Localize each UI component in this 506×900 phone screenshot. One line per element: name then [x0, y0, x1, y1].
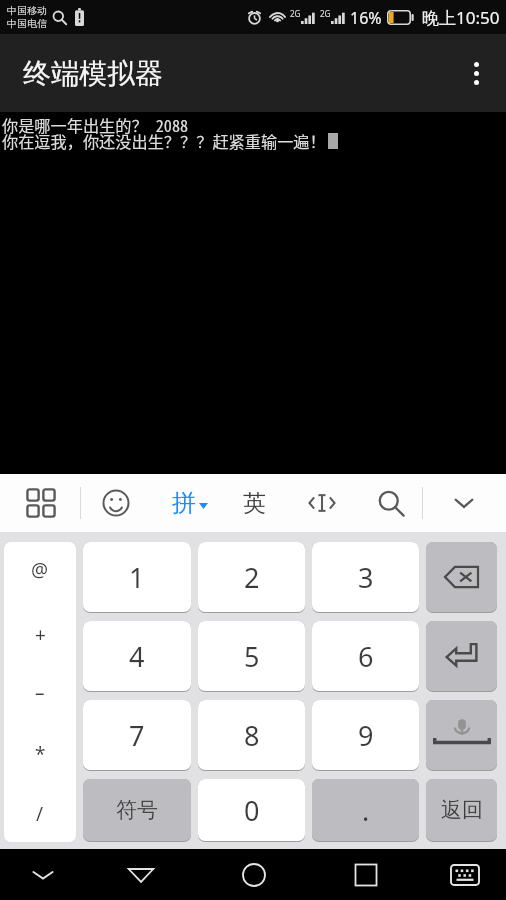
staticText: 你是哪一年出生的？ 2088 [2, 113, 189, 136]
button[interactable]: Switch keyboard [437, 849, 493, 900]
staticText: 4 [129, 638, 145, 675]
button[interactable] [426, 700, 497, 770]
staticText: 终端模拟器 [23, 56, 163, 91]
other: Voice input [426, 700, 497, 771]
button[interactable] [426, 542, 497, 612]
button[interactable]: 8 [198, 700, 305, 770]
button[interactable]: Emoji [88, 474, 144, 532]
staticText: + [35, 622, 46, 648]
button[interactable]: 5 [198, 621, 305, 691]
button[interactable]: Search [363, 474, 419, 532]
staticText: 中国电信 [7, 17, 47, 30]
other: Backspace [426, 542, 497, 613]
staticText: 7 [129, 717, 145, 754]
staticText: 9 [358, 717, 374, 754]
staticText: 5 [244, 638, 260, 675]
staticText: 2G [290, 8, 301, 19]
staticText: 英 [243, 489, 266, 518]
button[interactable]: 符号 [83, 779, 191, 841]
staticText: 你在逗我，你还没出生？？？赶紧重输一遍！ [2, 129, 326, 152]
button[interactable]: Recents [338, 849, 394, 900]
button[interactable]: More options [446, 34, 506, 112]
button[interactable]: Hide keyboard [436, 474, 492, 532]
button[interactable]: Back [113, 849, 169, 900]
button[interactable]: 3 [312, 542, 419, 612]
button[interactable]: 6 [312, 621, 419, 691]
button[interactable]: Home [226, 849, 282, 900]
staticText: * [35, 741, 46, 767]
staticText: @ [31, 557, 49, 583]
other: Return [426, 779, 497, 842]
button[interactable]: @ [4, 542, 76, 842]
button[interactable]: 4 [83, 621, 191, 691]
button[interactable]: 0 [198, 779, 305, 841]
staticText: 2G [320, 8, 331, 19]
staticText: 2 [244, 559, 260, 596]
button[interactable]: . [312, 779, 419, 841]
staticText: 0 [244, 792, 260, 829]
button[interactable] [426, 621, 497, 691]
staticText: 6 [358, 638, 374, 675]
button[interactable]: 1 [83, 542, 191, 612]
button[interactable]: 英 [226, 474, 282, 532]
button[interactable]: 9 [312, 700, 419, 770]
staticText: 3 [358, 559, 374, 596]
staticText: 8 [244, 717, 260, 754]
staticText: 晚上10:50 [422, 6, 500, 29]
button[interactable]: 2 [198, 542, 305, 612]
staticText: / [36, 801, 44, 827]
other: Enter [426, 621, 497, 692]
button[interactable]: 7 [83, 700, 191, 770]
button[interactable]: Hide keyboard [15, 849, 71, 900]
staticText: 16% [350, 7, 382, 29]
staticText: 中国移动 [7, 4, 47, 17]
button[interactable]: 拼 [156, 474, 224, 532]
staticText: 拼 [172, 488, 196, 518]
button[interactable]: 返回 [426, 779, 497, 841]
button[interactable]: Cursor move [294, 474, 350, 532]
staticText: – [35, 680, 45, 706]
staticText: 1 [129, 559, 145, 596]
staticText: 符号 [116, 797, 158, 823]
staticText: . [362, 792, 370, 829]
staticText: 返回 [441, 797, 483, 823]
button[interactable]: Keyboard layouts [13, 474, 69, 532]
